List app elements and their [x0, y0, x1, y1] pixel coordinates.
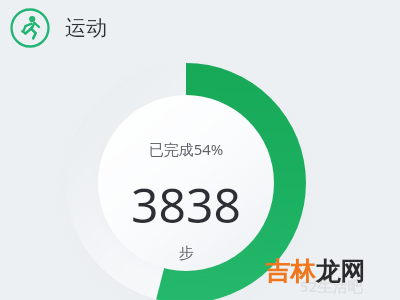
button[interactable]: 已完成54%	[0, 0, 400, 300]
staticText: 步	[0, 244, 372, 263]
staticText: 3838	[0, 172, 372, 237]
other: Exercise	[9, 7, 51, 49]
staticText: 运动	[65, 15, 107, 41]
staticText: 龙网	[315, 256, 365, 287]
button[interactable]: Exercise	[9, 7, 107, 49]
staticText: 吉林	[265, 256, 315, 287]
staticText: 已完成54%	[0, 139, 372, 159]
staticText: 52生活吧	[300, 276, 363, 296]
